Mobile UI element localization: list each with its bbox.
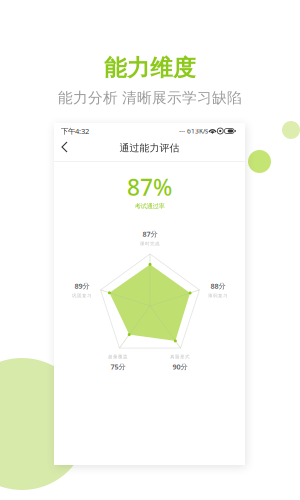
staticText: 考试通过率 xyxy=(134,202,164,210)
staticText: 课时完成 xyxy=(140,241,160,246)
staticText: 下午4:32 xyxy=(61,126,89,136)
staticText: 89分 xyxy=(74,281,89,291)
staticText: 75分 xyxy=(110,362,125,371)
staticText: 88分 xyxy=(210,281,225,291)
button[interactable]: 返回 xyxy=(58,138,78,158)
staticText: ··· xyxy=(179,126,185,136)
staticText: 能力分析 清晰展示学习缺陷 xyxy=(58,89,242,107)
staticText: 87分 xyxy=(142,229,157,239)
staticText: 613K/s xyxy=(185,126,208,136)
staticText: 87% xyxy=(127,172,172,202)
staticText: 能力维度 xyxy=(104,54,196,82)
staticText: 90分 xyxy=(172,362,187,371)
staticText: 通过能力评估 xyxy=(119,142,179,154)
staticText: 巩固复习 xyxy=(72,293,92,298)
staticText: 超量覆盖 xyxy=(108,354,128,360)
staticText: 真题形式 xyxy=(170,354,190,360)
staticText: 薄弱复习 xyxy=(208,293,228,298)
